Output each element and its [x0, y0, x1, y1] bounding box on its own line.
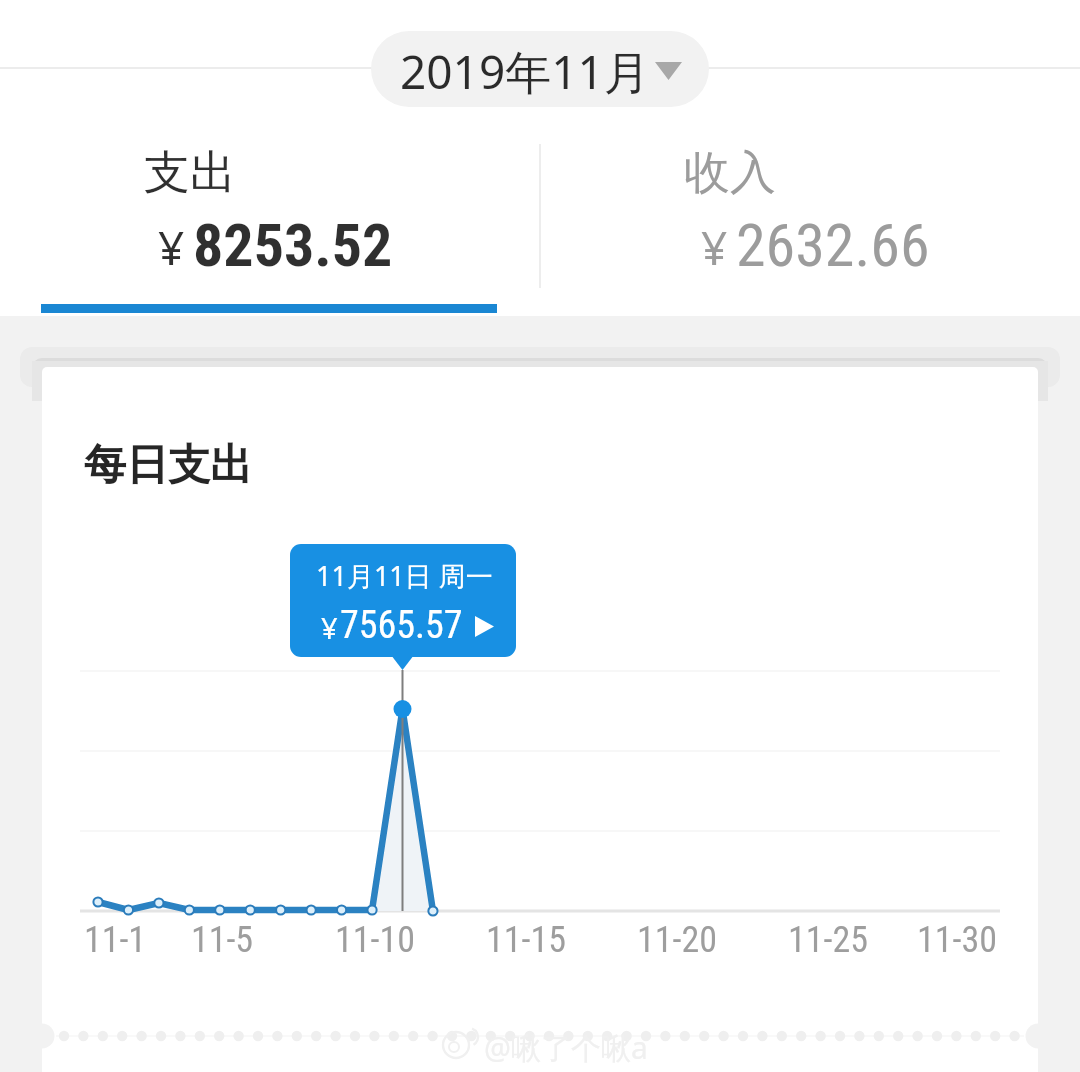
button[interactable]: 收入: [540, 146, 1080, 288]
staticText: ¥: [158, 216, 185, 279]
staticText: 11-1: [55, 919, 175, 961]
staticText: 11-20: [617, 919, 737, 961]
button[interactable]: 2019年11月: [371, 31, 709, 107]
staticText: 2019年11月: [400, 40, 650, 103]
staticText: 11-10: [315, 919, 435, 961]
button[interactable]: 每日支出: [42, 367, 1038, 1072]
staticText: ¥: [321, 608, 338, 647]
other: Choose month: [655, 62, 682, 80]
staticText: 2632.66: [736, 210, 930, 280]
staticText: 11月11日 周一: [316, 557, 493, 594]
staticText: @啾了个啾a: [484, 1027, 648, 1068]
staticText: 7565.57: [340, 603, 463, 648]
staticText: 11-30: [897, 919, 1017, 961]
staticText: 支出: [0, 144, 460, 202]
staticText: 收入: [460, 144, 1000, 202]
staticText: ¥: [701, 216, 728, 279]
staticText: 11-15: [466, 919, 586, 961]
staticText: 11-25: [768, 919, 888, 961]
button[interactable]: 支出: [0, 146, 540, 288]
staticText: 每日支出: [84, 439, 252, 492]
other: View day details: [475, 616, 494, 637]
staticText: 8253.52: [193, 210, 393, 280]
button[interactable]: 11月11日 周一: [290, 544, 516, 657]
staticText: 11-5: [162, 919, 282, 961]
